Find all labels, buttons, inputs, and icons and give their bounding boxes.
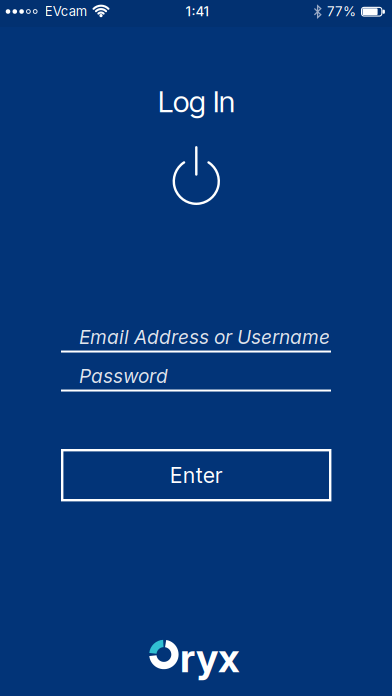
staticText: Enter xyxy=(170,462,223,488)
staticText: Email Address or Username xyxy=(79,325,330,349)
staticText: 77% xyxy=(327,3,356,19)
button[interactable]: Password xyxy=(61,364,331,392)
staticText: Password xyxy=(79,364,168,388)
staticText: EVcam xyxy=(45,3,87,19)
staticText: 1:41 xyxy=(185,3,209,19)
staticText: ryx xyxy=(180,633,240,682)
button[interactable]: Enter xyxy=(61,449,331,501)
staticText: Log In xyxy=(158,84,235,119)
button[interactable]: Email Address or Username xyxy=(61,325,331,353)
